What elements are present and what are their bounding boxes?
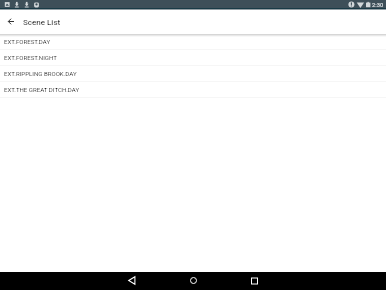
staticText: EXT.THE GREAT DITCH.DAY [4, 86, 80, 93]
staticText: EXT.FOREST.DAY [4, 38, 51, 45]
button[interactable]: Navigate up [0, 10, 21, 34]
button[interactable]: Back [123, 272, 141, 290]
staticText: 2:30 [372, 2, 384, 9]
button[interactable]: EXT.FOREST.DAY [0, 34, 386, 50]
button[interactable]: Recent apps [245, 272, 263, 290]
button[interactable]: Home [184, 272, 202, 290]
staticText: EXT.FOREST.NIGHT [4, 54, 57, 61]
staticText: Scene List [23, 18, 61, 27]
button[interactable]: EXT.RIPPLING BROOK.DAY [0, 66, 386, 82]
button[interactable]: EXT.THE GREAT DITCH.DAY [0, 82, 386, 98]
button[interactable]: EXT.FOREST.NIGHT [0, 50, 386, 66]
staticText: EXT.RIPPLING BROOK.DAY [4, 70, 77, 77]
